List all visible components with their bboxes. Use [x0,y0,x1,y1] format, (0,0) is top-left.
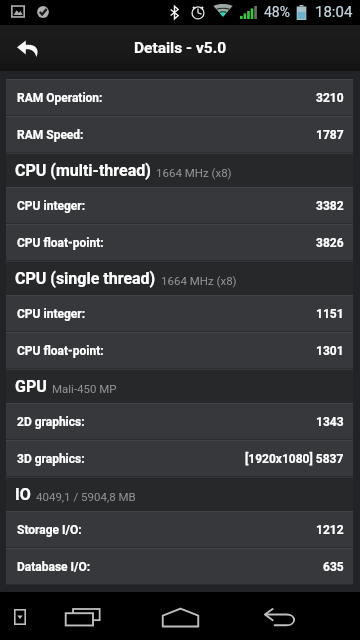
staticText: 1151 [316,307,344,321]
button[interactable]: CPU float-point: [6,332,353,369]
staticText: 18:04 [315,3,353,21]
button[interactable]: Menu [0,592,40,640]
staticText: [1920x1080] 5837 [245,452,344,466]
button[interactable]: RAM Speed: [6,116,353,153]
staticText: 1664 MHz (x8) [156,166,232,179]
button[interactable]: Storage I/O: [6,511,353,548]
staticText: 1212 [316,523,344,537]
button[interactable]: RAM Operation: [6,79,353,116]
staticText: IO [15,485,31,504]
staticText: 3826 [316,236,344,250]
staticText: 2D graphics: [17,415,85,429]
staticText: Mali-450 MP [52,382,117,395]
staticText: Database I/O: [17,560,91,574]
staticText: 1343 [316,415,344,429]
staticText: CPU (multi-thread) [15,161,151,180]
staticText: CPU integer: [17,307,86,321]
staticText: CPU float-point: [17,344,104,358]
staticText: 4049,1 / 5904,8 MB [36,490,136,503]
button[interactable]: CPU integer: [6,295,353,332]
staticText: 3D graphics: [17,452,85,466]
button[interactable]: CPU float-point: [6,224,353,261]
button[interactable]: 3D graphics: [6,440,353,477]
staticText: CPU (single thread) [15,269,156,288]
button[interactable]: CPU integer: [6,187,353,224]
staticText: GPU [15,377,47,396]
staticText: 1664 MHz (x8) [161,274,237,287]
staticText: 3382 [316,199,344,213]
button[interactable]: Recent apps [56,592,106,640]
staticText: 1301 [316,344,344,358]
button[interactable]: Back [0,25,56,71]
staticText: CPU float-point: [17,236,104,250]
staticText: RAM Speed: [17,128,84,142]
button[interactable]: Back [250,592,310,640]
staticText: Storage I/O: [17,523,82,537]
staticText: 3210 [316,91,344,105]
button[interactable]: 2D graphics: [6,403,353,440]
staticText: 48% [264,4,290,20]
button[interactable]: Home [150,592,210,640]
staticText: Details - v5.0 [134,39,227,57]
button[interactable]: Database I/O: [6,548,353,585]
staticText: CPU integer: [17,199,86,213]
staticText: 1787 [316,128,344,142]
staticText: RAM Operation: [17,91,103,105]
staticText: 635 [323,560,344,574]
